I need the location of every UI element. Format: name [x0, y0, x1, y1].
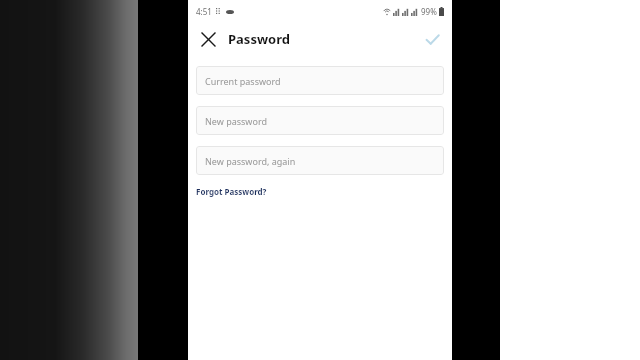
button[interactable]: New password: [196, 106, 444, 135]
button[interactable]: Submit: [420, 27, 444, 51]
button[interactable]: Current password: [196, 66, 444, 95]
staticText: Current password: [205, 75, 281, 87]
staticText: Forgot Password?: [196, 186, 267, 197]
button[interactable]: Close: [196, 27, 220, 51]
staticText: Password: [228, 30, 290, 48]
button[interactable]: New password, again: [196, 146, 444, 175]
staticText: New password: [205, 115, 267, 127]
staticText: 4:51: [196, 6, 212, 17]
staticText: New password, again: [205, 155, 296, 167]
button[interactable]: Forgot Password?: [196, 184, 267, 199]
staticText: 99%: [421, 6, 437, 17]
